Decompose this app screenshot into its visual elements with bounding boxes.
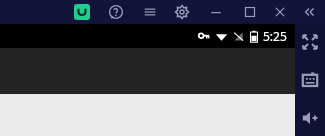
button[interactable]: Fullscreen bbox=[300, 32, 320, 52]
button[interactable]: Settings bbox=[174, 4, 190, 20]
button[interactable]: App icon bbox=[74, 4, 90, 20]
button[interactable]: Close bbox=[272, 4, 288, 20]
button[interactable]: Minimize bbox=[208, 4, 224, 20]
button[interactable]: Help bbox=[108, 4, 124, 20]
staticText: 5:25 bbox=[263, 28, 287, 44]
button[interactable]: Menu bbox=[142, 4, 158, 20]
button[interactable]: Collapse bbox=[302, 4, 318, 20]
button[interactable]: Volume up bbox=[300, 108, 320, 128]
button[interactable]: Maximize bbox=[242, 4, 258, 20]
button[interactable]: Keyboard bbox=[300, 70, 320, 90]
